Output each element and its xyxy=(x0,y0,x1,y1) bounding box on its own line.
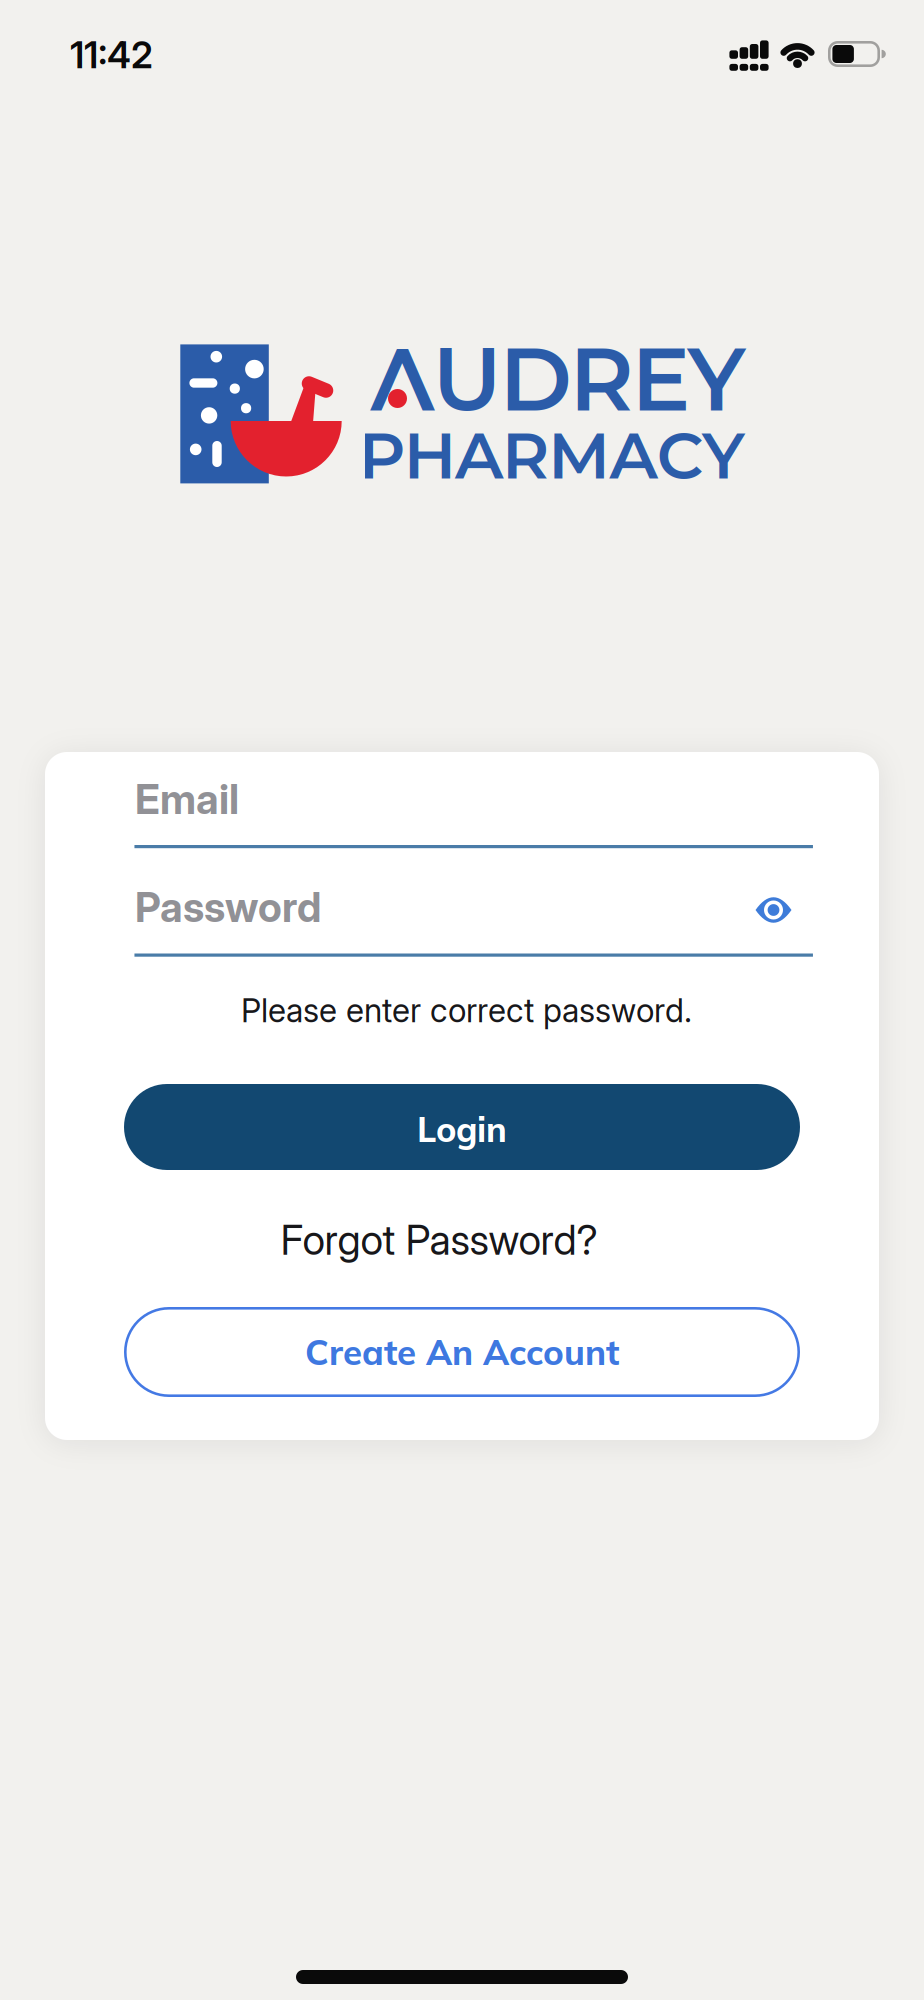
button[interactable]: Create An Account xyxy=(124,1307,800,1397)
button[interactable]: Show password xyxy=(751,888,795,932)
staticText: PHARMACY xyxy=(358,416,745,495)
staticText: ΛUDREY xyxy=(370,325,745,432)
staticText: Login xyxy=(417,1108,507,1150)
button[interactable]: Email xyxy=(134,766,813,852)
staticText: Create An Account xyxy=(305,1330,619,1374)
staticText: 11:42 xyxy=(70,33,153,77)
staticText: Please enter correct password. xyxy=(241,991,692,1030)
button[interactable]: Login xyxy=(124,1084,800,1170)
button[interactable]: Password xyxy=(134,874,813,960)
staticText: Email xyxy=(135,774,239,824)
staticText: Forgot Password? xyxy=(280,1215,597,1265)
staticText: Password xyxy=(135,882,321,932)
button[interactable]: Forgot Password? xyxy=(272,1215,605,1265)
